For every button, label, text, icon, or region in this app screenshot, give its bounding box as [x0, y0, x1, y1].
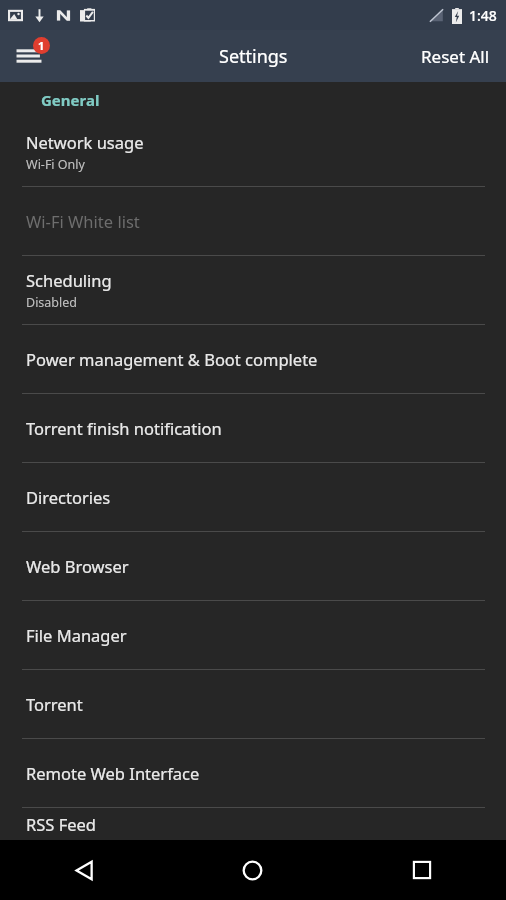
staticText: 1 — [38, 38, 45, 53]
staticText: Torrent — [26, 693, 83, 715]
button[interactable]: Recent apps — [337, 840, 506, 900]
staticText: Torrent finish notification — [26, 417, 222, 439]
button[interactable]: Directories — [0, 463, 506, 531]
staticText: Power management & Boot complete — [26, 348, 318, 370]
staticText: Settings — [219, 44, 288, 69]
staticText: Directories — [26, 486, 111, 508]
staticText: General — [41, 90, 100, 110]
staticText: Reset All — [421, 45, 490, 68]
staticText: File Manager — [26, 624, 127, 646]
button[interactable]: Torrent finish notification — [0, 394, 506, 462]
staticText: Disabled — [26, 294, 78, 311]
button[interactable]: Remote Web Interface — [0, 739, 506, 807]
button[interactable]: Open navigation menu — [6, 33, 52, 79]
button[interactable]: Wi-Fi White list — [0, 187, 506, 255]
staticText: Wi-Fi White list — [26, 210, 140, 232]
button[interactable]: Home — [168, 840, 337, 900]
button[interactable]: Web Browser — [0, 532, 506, 600]
staticText: Scheduling — [26, 269, 112, 291]
staticText: Wi-Fi Only — [26, 156, 85, 173]
button[interactable]: Network usage — [0, 118, 506, 186]
button[interactable]: Scheduling — [0, 256, 506, 324]
button[interactable]: Power management & Boot complete — [0, 325, 506, 393]
staticText: Network usage — [26, 131, 144, 153]
button[interactable]: Torrent — [0, 670, 506, 738]
button[interactable]: RSS Feed — [0, 808, 506, 840]
staticText: Remote Web Interface — [26, 762, 200, 784]
staticText: RSS Feed — [26, 813, 96, 835]
button[interactable]: Reset All — [405, 33, 506, 80]
button[interactable]: Back — [0, 840, 168, 900]
button[interactable]: File Manager — [0, 601, 506, 669]
staticText: 1:48 — [469, 6, 497, 25]
staticText: Web Browser — [26, 555, 129, 577]
